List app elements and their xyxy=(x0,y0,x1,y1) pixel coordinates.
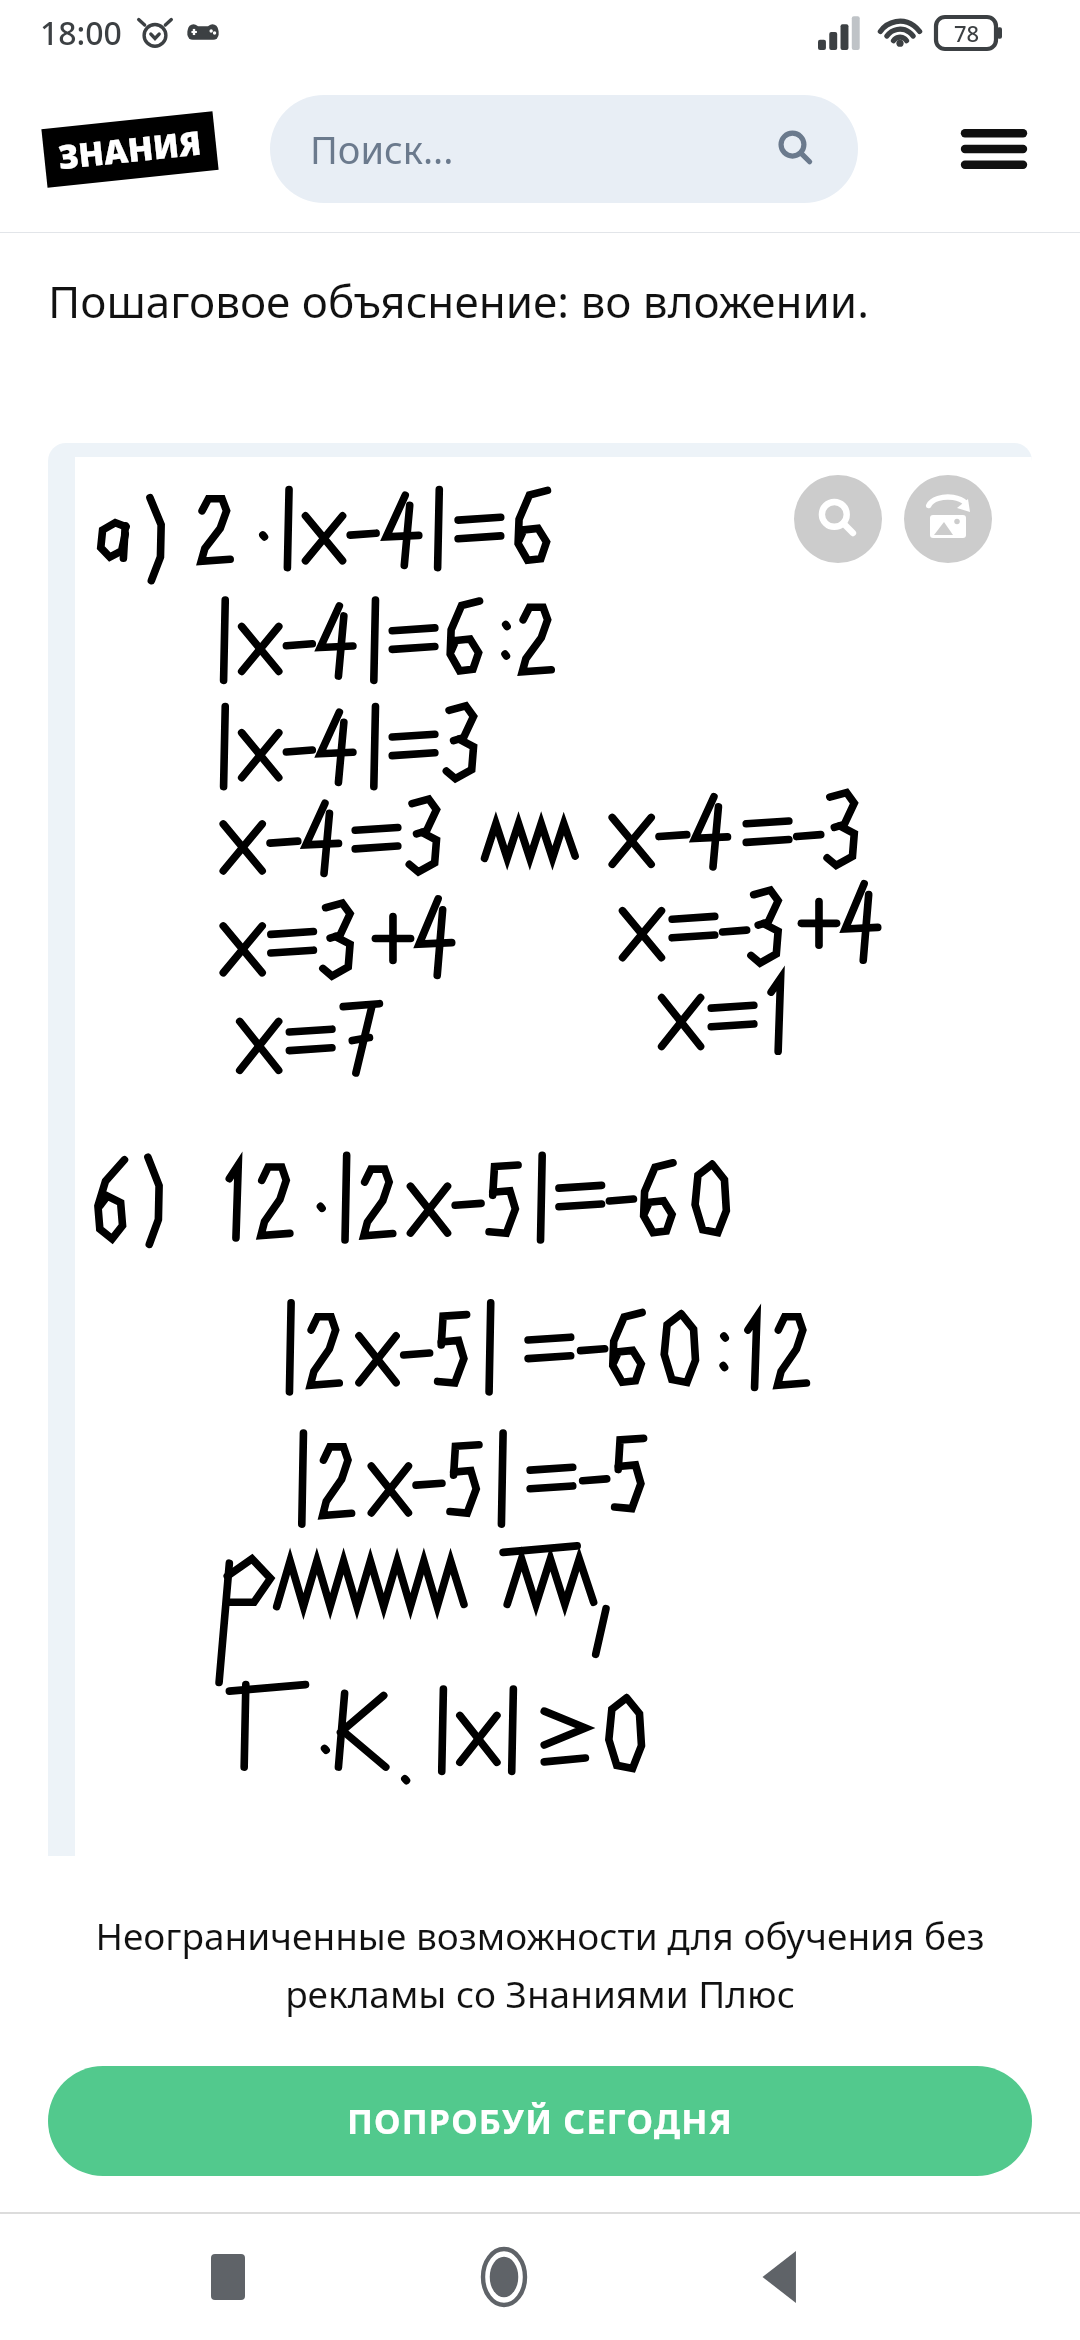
staticText: 78 xyxy=(954,18,980,48)
button[interactable]: Увеличить xyxy=(794,475,882,563)
staticText: Поиск... xyxy=(310,123,774,175)
button[interactable]: Поиск... xyxy=(270,95,858,203)
button[interactable]: Повернуть изображение xyxy=(904,475,992,563)
button[interactable]: Последние приложения xyxy=(180,2229,276,2325)
staticText: Пошаговое объяснение: во вложении. xyxy=(48,271,869,331)
staticText: ЗНАНИЯ xyxy=(56,120,204,179)
button[interactable]: Увеличить xyxy=(48,443,1032,1856)
button[interactable]: Меню xyxy=(952,107,1036,191)
button[interactable]: ПОПРОБУЙ СЕГОДНЯ xyxy=(48,2066,1032,2176)
staticText: ПОПРОБУЙ СЕГОДНЯ xyxy=(347,2098,734,2144)
staticText: Неограниченные возможности для обучения … xyxy=(60,1910,1020,2018)
button[interactable]: Знания, на главную xyxy=(44,120,216,179)
button[interactable]: Назад xyxy=(732,2229,828,2325)
staticText: 18:00 xyxy=(40,11,122,55)
button[interactable]: Домой xyxy=(456,2229,552,2325)
